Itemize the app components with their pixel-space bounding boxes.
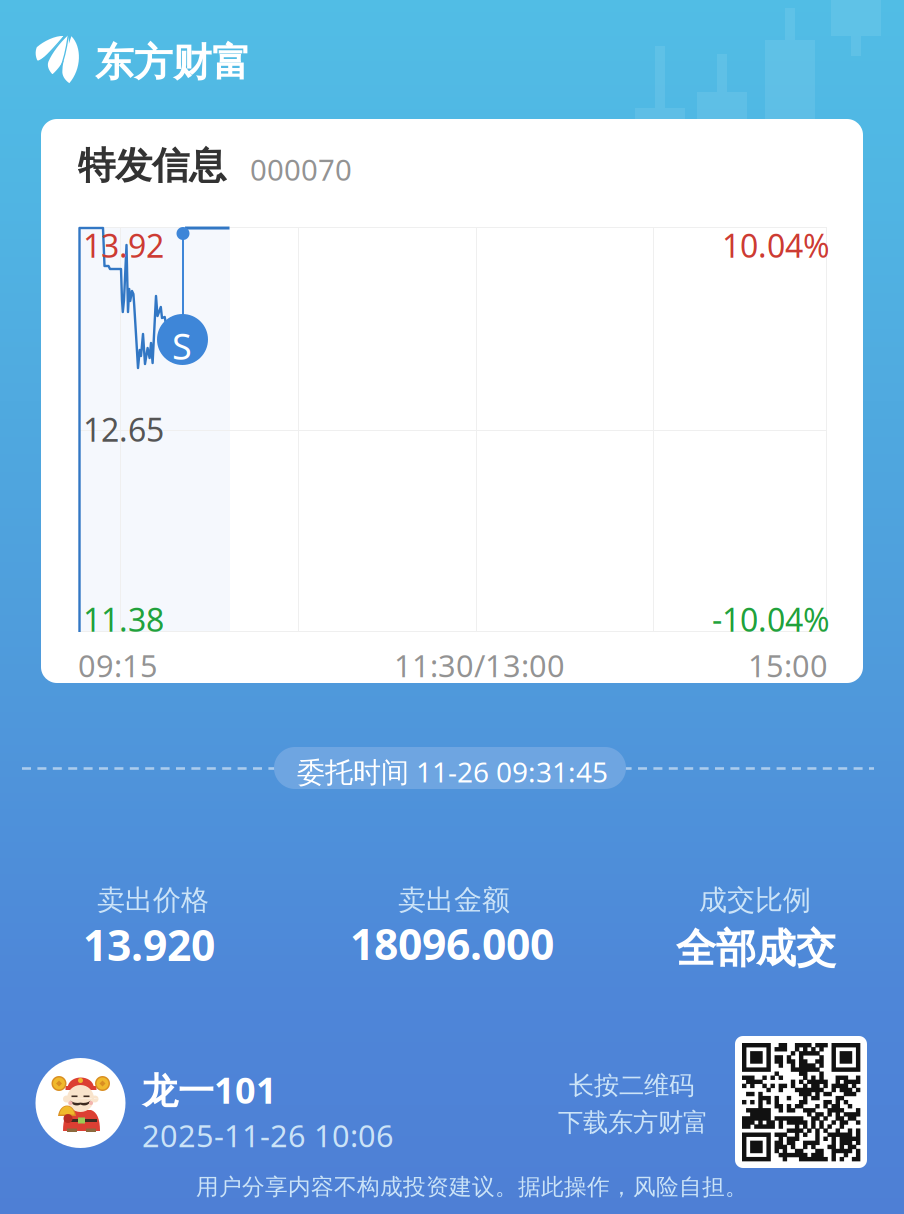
- staticText: 龙一101: [142, 1066, 277, 1114]
- staticText: 全部成交: [676, 924, 836, 973]
- staticText: 13.920: [83, 916, 215, 973]
- staticText: 下载东方财富: [558, 1107, 708, 1138]
- staticText: 18096.000: [350, 915, 554, 972]
- staticText: 特发信息: [78, 143, 226, 189]
- staticText: 12.65: [83, 408, 164, 450]
- staticText: 2025-11-26 10:06: [142, 1115, 394, 1156]
- staticText: 13.92: [83, 224, 164, 266]
- staticText: 09:15: [78, 645, 158, 686]
- staticText: 委托时间 11-26 09:31:45: [297, 753, 608, 790]
- staticText: 11:30/13:00: [394, 645, 565, 686]
- staticText: 000070: [250, 150, 352, 189]
- staticText: S: [172, 322, 192, 370]
- staticText: 用户分享内容不构成投资建议。据此操作，风险自担。: [196, 1173, 748, 1201]
- staticText: 成交比例: [699, 883, 811, 917]
- staticText: 长按二维码: [569, 1070, 694, 1101]
- staticText: 卖出金额: [398, 883, 510, 917]
- staticText: 15:00: [748, 645, 828, 686]
- staticText: 11.38: [83, 598, 164, 640]
- staticText: 卖出价格: [97, 883, 209, 917]
- staticText: -10.04%: [712, 598, 830, 640]
- staticText: 东方财富: [95, 39, 251, 86]
- staticText: 10.04%: [722, 224, 830, 266]
